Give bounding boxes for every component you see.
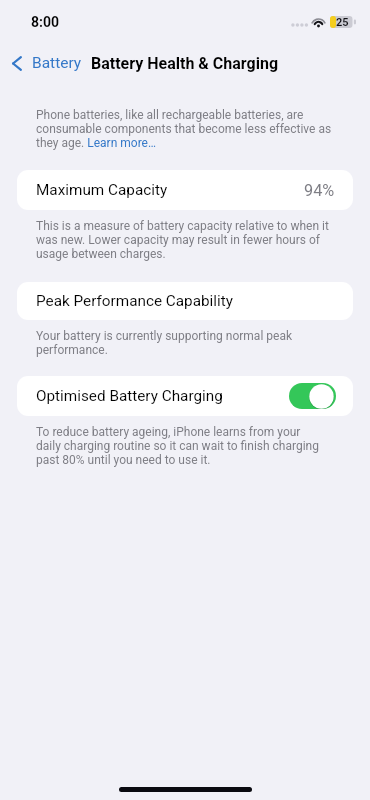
staticText: 8:00 (31, 14, 60, 30)
staticText: This is a measure of battery capacity re… (36, 219, 329, 261)
staticText: 94% (304, 181, 335, 200)
staticText: Optimised Battery Charging (36, 387, 223, 405)
button[interactable]: Maximum Capacity (17, 170, 353, 210)
staticText: Battery Health & Charging (91, 54, 279, 73)
staticText: Peak Performance Capability (36, 292, 233, 310)
button[interactable]: Battery (0, 48, 92, 78)
staticText: Phone batteries, like all rechargeable b… (36, 108, 332, 150)
staticText: Maximum Capacity (36, 181, 168, 199)
button[interactable]: Optimised Battery Charging, on (289, 383, 336, 409)
staticText: To reduce battery ageing, iPhone learns … (36, 425, 319, 467)
staticText: 25 (336, 16, 349, 29)
staticText: Battery (32, 54, 82, 72)
button[interactable]: Peak Performance Capability (17, 282, 353, 320)
staticText: Your battery is currently supporting nor… (36, 329, 292, 357)
